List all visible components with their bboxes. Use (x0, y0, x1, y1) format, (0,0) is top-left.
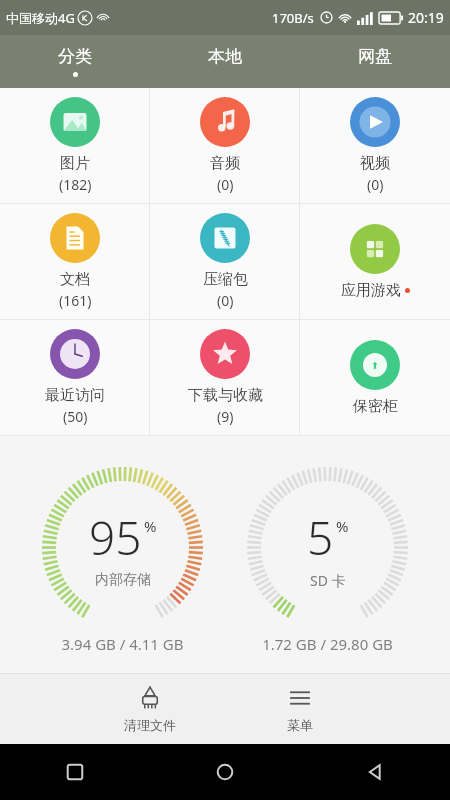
button[interactable]: 清理文件 (75, 674, 225, 744)
staticText: 保密柜 (353, 397, 398, 416)
staticText: SD 卡 (310, 571, 346, 590)
staticText: 20:19 (408, 8, 444, 27)
button[interactable]: 压缩包 (150, 204, 300, 319)
staticText: % (336, 516, 349, 536)
staticText: (0) (367, 175, 384, 194)
staticText: 网盘 (358, 46, 392, 67)
button[interactable]: 分类 (0, 35, 150, 88)
staticText: 中国移动4G (6, 9, 75, 27)
staticText: 内部存储 (95, 571, 151, 589)
staticText: % (144, 516, 157, 536)
staticText: 最近访问 (45, 386, 105, 405)
button[interactable]: 本地 (150, 35, 300, 88)
staticText: 下载与收藏 (188, 386, 263, 405)
staticText: (9) (217, 407, 234, 426)
button[interactable]: 保密柜 (300, 320, 450, 435)
staticText: (0) (217, 175, 234, 194)
staticText: 菜单 (287, 717, 313, 733)
button[interactable]: 图片 (0, 88, 150, 203)
button[interactable]: Back (300, 744, 450, 800)
button[interactable]: 视频 (300, 88, 450, 203)
button[interactable]: 网盘 (300, 35, 450, 88)
staticText: (161) (59, 291, 92, 310)
staticText: 压缩包 (203, 270, 248, 289)
button[interactable]: 菜单 (225, 674, 375, 744)
button[interactable]: 最近访问 (0, 320, 150, 435)
staticText: 图片 (60, 154, 90, 173)
staticText: 视频 (360, 154, 390, 173)
staticText: 95 (89, 506, 142, 569)
staticText: 3.94 GB / 4.11 GB (61, 634, 184, 654)
staticText: 清理文件 (124, 717, 176, 733)
button[interactable]: 音频 (150, 88, 300, 203)
staticText: 5 (307, 506, 334, 569)
button[interactable]: 下载与收藏 (150, 320, 300, 435)
staticText: (0) (217, 291, 234, 310)
staticText: 本地 (208, 46, 242, 67)
staticText: 1.72 GB / 29.80 GB (262, 634, 393, 654)
staticText: 170B/s (272, 9, 314, 27)
button[interactable]: Home (150, 744, 300, 800)
button[interactable]: 文档 (0, 204, 150, 319)
staticText: (50) (63, 407, 88, 426)
staticText: 文档 (60, 270, 90, 289)
staticText: 分类 (58, 46, 92, 67)
staticText: (182) (59, 175, 92, 194)
staticText: 应用游戏 (341, 281, 401, 300)
button[interactable]: Recents (0, 744, 150, 800)
staticText: 音频 (210, 154, 240, 173)
button[interactable]: 应用游戏 (300, 204, 450, 319)
